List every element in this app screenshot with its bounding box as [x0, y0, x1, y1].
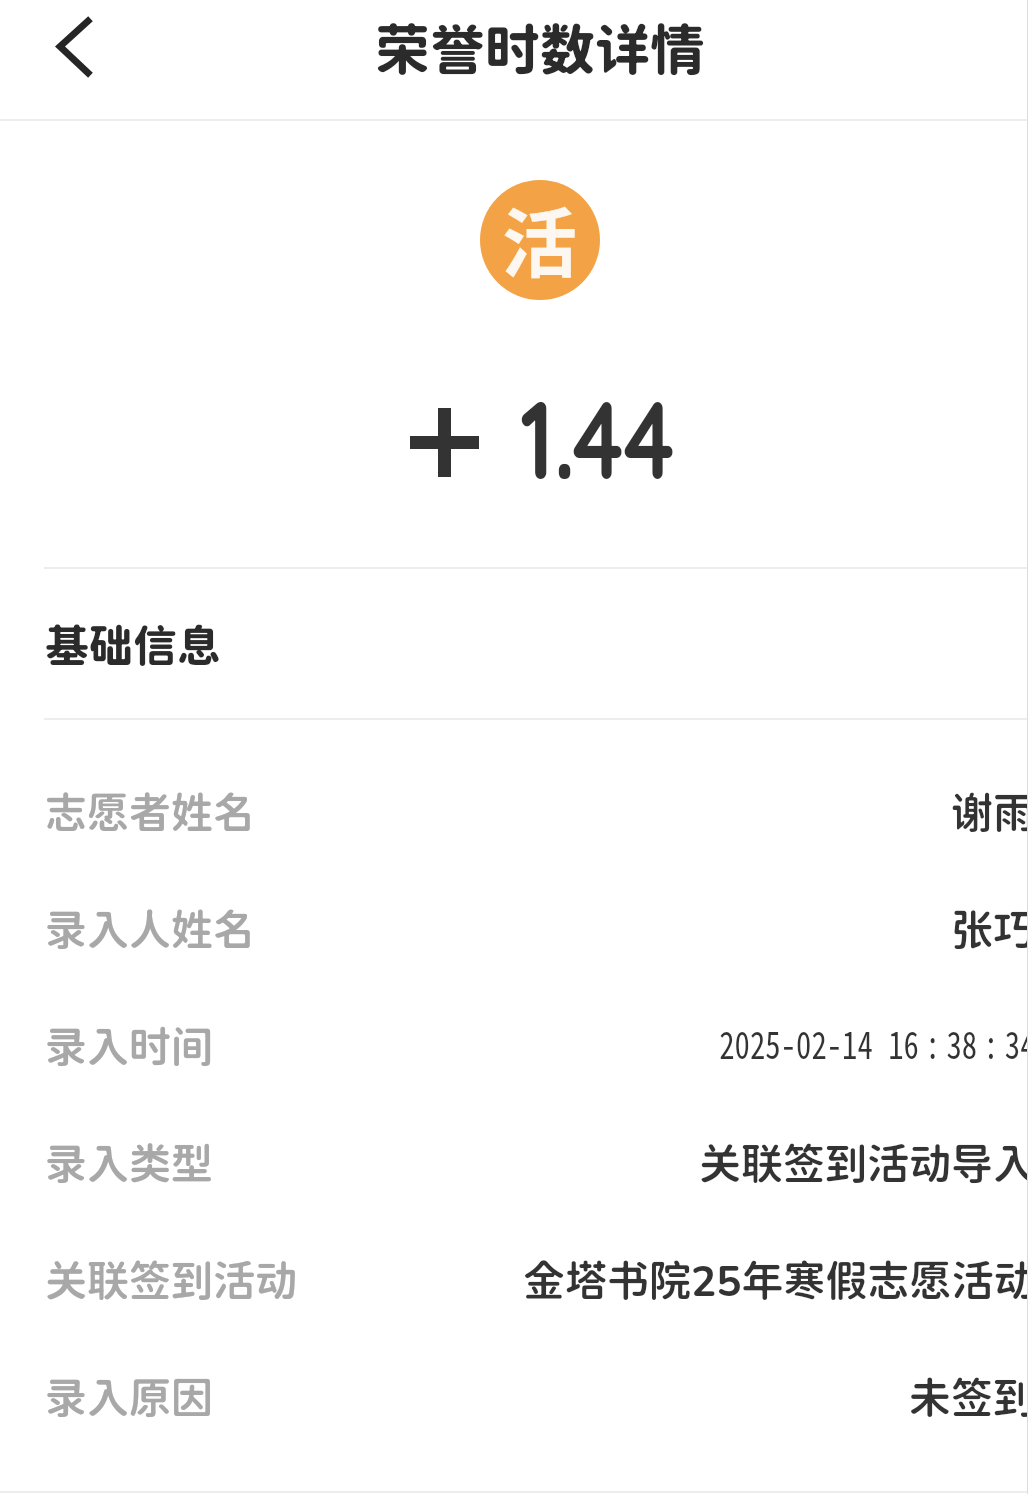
staticText: 未签到	[909, 1372, 1028, 1422]
staticText: 录入时间	[45, 1021, 214, 1071]
staticText: 录入类型	[45, 1138, 214, 1188]
button[interactable]: 录入类型	[0, 1105, 1028, 1221]
button[interactable]: 志愿者姓名	[0, 754, 1028, 870]
staticText: 关联签到活动	[45, 1255, 298, 1305]
staticText: 志愿者姓名	[45, 787, 256, 837]
button[interactable]: 录入人姓名	[0, 871, 1028, 987]
button[interactable]: 返回	[20, 8, 120, 108]
staticText: 荣誉时数详情	[0, 17, 1028, 82]
staticText: 张巧	[951, 904, 1028, 954]
staticText: 基础信息	[45, 619, 221, 671]
staticText: 活	[502, 184, 578, 293]
staticText: 谢雨	[951, 787, 1028, 837]
staticText: 1.44	[520, 370, 675, 506]
staticText: 录入人姓名	[45, 904, 256, 954]
button[interactable]: 录入原因	[0, 1339, 1028, 1455]
staticText: 录入原因	[45, 1372, 214, 1422]
staticText: 关联签到活动导入	[699, 1138, 1028, 1188]
button[interactable]: 录入时间	[0, 988, 1028, 1104]
staticText: 2025-02-14 16 : 38 : 34	[719, 1015, 1028, 1070]
staticText: 金塔书院25年寒假志愿活动	[523, 1255, 1028, 1305]
button[interactable]: 关联签到活动	[0, 1222, 1028, 1338]
